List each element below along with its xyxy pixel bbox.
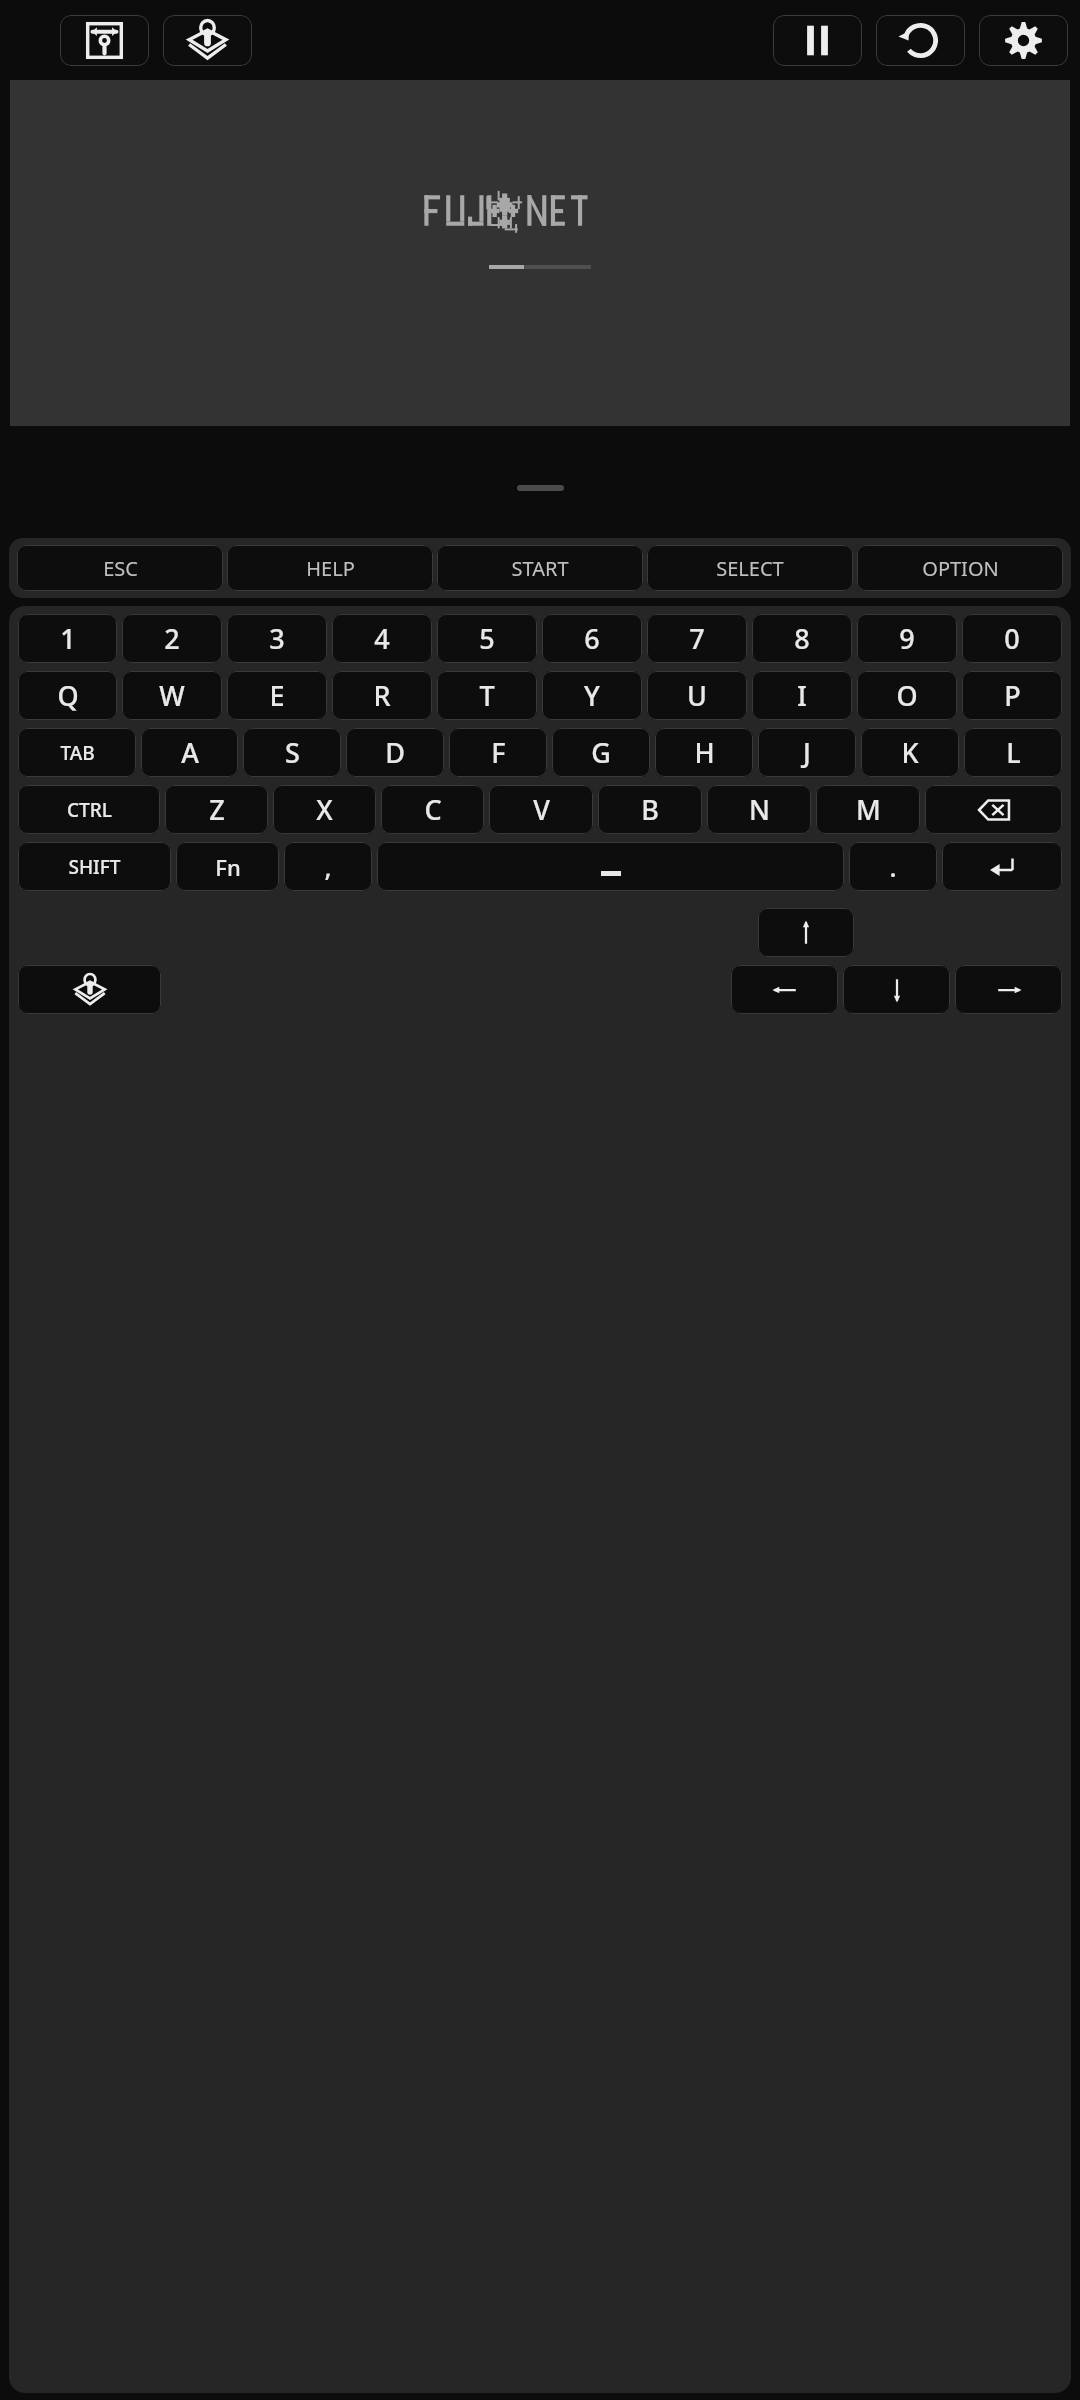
staticText: 2 (164, 620, 180, 657)
button[interactable]: Y (542, 671, 642, 720)
button[interactable]: V (489, 785, 593, 834)
button[interactable]: X (273, 785, 376, 834)
button[interactable]: Right (955, 965, 1062, 1014)
button[interactable]: C (381, 785, 484, 834)
button[interactable]: 9 (857, 614, 957, 663)
staticText: Fn (215, 852, 241, 882)
button[interactable]: H (655, 728, 753, 777)
staticText: ESC (103, 555, 138, 582)
staticText: O (896, 677, 918, 714)
button[interactable]: , (284, 842, 372, 891)
button[interactable]: T (437, 671, 537, 720)
button[interactable]: Left (731, 965, 838, 1014)
button[interactable]: Q (18, 671, 117, 720)
staticText: K (901, 734, 919, 771)
button[interactable]: Reset (876, 15, 965, 66)
staticText: R (373, 677, 391, 714)
button[interactable]: Pause (773, 15, 862, 66)
button[interactable]: ESC (17, 545, 223, 591)
staticText: 0 (1004, 620, 1020, 657)
staticText: 4 (374, 620, 390, 657)
button[interactable]: 5 (437, 614, 537, 663)
button[interactable]: 8 (752, 614, 852, 663)
button[interactable]: START (437, 545, 643, 591)
staticText: I (797, 677, 807, 714)
staticText: B (641, 791, 659, 828)
button[interactable]: Fn (176, 842, 279, 891)
staticText: L (1006, 734, 1021, 771)
button[interactable]: 6 (542, 614, 642, 663)
button[interactable]: SELECT (647, 545, 853, 591)
staticText: S (285, 734, 300, 771)
button[interactable]: Joystick (18, 965, 161, 1014)
button[interactable]: 0 (962, 614, 1062, 663)
button[interactable]: R (332, 671, 432, 720)
button[interactable]: O (857, 671, 957, 720)
staticText: Q (57, 677, 79, 714)
button[interactable]: G (552, 728, 650, 777)
button[interactable]: A (141, 728, 238, 777)
staticText: F (491, 734, 506, 771)
button[interactable]: SHIFT (18, 842, 171, 891)
button[interactable]: 4 (332, 614, 432, 663)
staticText: X (316, 791, 333, 828)
button[interactable]: N (707, 785, 811, 834)
button[interactable]: 3 (227, 614, 327, 663)
button[interactable]: Up (758, 908, 854, 957)
button[interactable]: HELP (227, 545, 433, 591)
staticText: 1 (60, 620, 76, 657)
button[interactable]: Toggle screen orientation (60, 15, 149, 66)
staticText: . (889, 849, 897, 884)
button[interactable]: U (647, 671, 747, 720)
button[interactable]: I (752, 671, 852, 720)
button[interactable]: E (227, 671, 327, 720)
button[interactable]: OPTION (857, 545, 1063, 591)
button[interactable]: D (346, 728, 444, 777)
staticText: SHIFT (68, 854, 121, 880)
staticText: Y (584, 677, 600, 714)
staticText: 7 (689, 620, 705, 657)
staticText: T (479, 677, 495, 714)
button[interactable]: Joystick (163, 15, 252, 66)
staticText: H (694, 734, 715, 771)
button[interactable]: Enter (942, 842, 1062, 891)
button[interactable]: F (449, 728, 547, 777)
button[interactable]: K (861, 728, 959, 777)
staticText: TAB (60, 740, 95, 766)
button[interactable]: Resize keyboard (517, 485, 564, 491)
button[interactable]: Settings (979, 15, 1068, 66)
staticText: START (511, 555, 569, 582)
button[interactable]: S (243, 728, 341, 777)
button[interactable]: Z (165, 785, 268, 834)
button[interactable]: W (122, 671, 222, 720)
staticText: G (591, 734, 611, 771)
staticText: HELP (306, 555, 355, 582)
staticText: SELECT (716, 555, 784, 582)
button[interactable]: B (598, 785, 702, 834)
button[interactable]: . (849, 842, 937, 891)
staticText: 6 (584, 620, 600, 657)
button[interactable]: Backspace (925, 785, 1062, 834)
button[interactable]: M (816, 785, 920, 834)
staticText: N (749, 791, 770, 828)
button[interactable]: 2 (122, 614, 222, 663)
staticText: P (1004, 677, 1021, 714)
staticText: 8 (794, 620, 810, 657)
button[interactable]: Space (377, 842, 844, 891)
button[interactable]: 1 (18, 614, 117, 663)
staticText: OPTION (922, 555, 999, 582)
button[interactable]: TAB (18, 728, 136, 777)
button[interactable]: L (964, 728, 1062, 777)
staticText: U (687, 677, 707, 714)
button[interactable]: P (962, 671, 1062, 720)
staticText: 9 (899, 620, 915, 657)
staticText: A (181, 734, 199, 771)
staticText: D (385, 734, 405, 771)
button[interactable]: 7 (647, 614, 747, 663)
staticText: M (856, 791, 881, 828)
staticText: Z (209, 791, 225, 828)
button[interactable]: CTRL (18, 785, 160, 834)
staticText: C (424, 791, 442, 828)
button[interactable]: J (758, 728, 856, 777)
button[interactable]: Down (843, 965, 950, 1014)
